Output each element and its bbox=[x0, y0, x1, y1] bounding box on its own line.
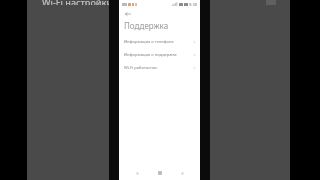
button[interactable]: Назад bbox=[132, 168, 142, 178]
staticText: Информация о поддержке bbox=[124, 52, 193, 57]
staticText: Wi-Fi настройки bbox=[42, 0, 113, 5]
button[interactable]: Недавние приложения bbox=[177, 168, 187, 178]
staticText: 9:30 bbox=[189, 2, 197, 7]
staticText: Wi-Fi работоспос. bbox=[124, 65, 193, 70]
button[interactable]: Информация о телефоне bbox=[119, 35, 200, 48]
button[interactable]: Информация о поддержке bbox=[119, 48, 200, 61]
button[interactable]: Wi-Fi работоспос. bbox=[119, 61, 200, 74]
button[interactable]: Назад bbox=[123, 9, 132, 18]
staticText: Поддержка bbox=[124, 20, 169, 31]
staticText: Информация о телефоне bbox=[124, 39, 193, 44]
button[interactable]: Главный экран bbox=[155, 168, 165, 178]
